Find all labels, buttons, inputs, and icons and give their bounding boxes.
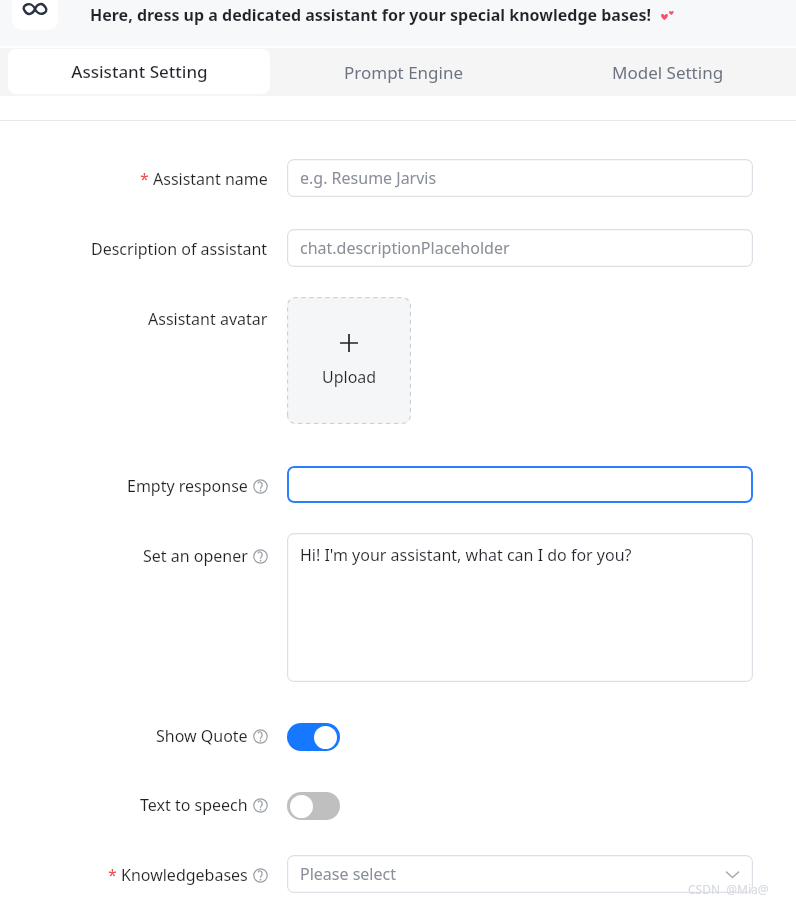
staticText: * [140, 168, 149, 190]
button[interactable]: Assistant Setting [8, 49, 270, 94]
button[interactable]: Prompt Engine [276, 48, 532, 96]
staticText: Empty response [127, 475, 248, 497]
staticText: chat.descriptionPlaceholder [300, 237, 510, 259]
staticText: Prompt Engine [344, 61, 464, 84]
staticText: Set an opener [143, 545, 248, 567]
button[interactable] [287, 466, 753, 503]
button[interactable]: Show Quote toggle [287, 723, 340, 751]
staticText: Assistant Setting [71, 60, 208, 83]
staticText: Text to speech [140, 794, 248, 816]
staticText: Please select [300, 863, 396, 885]
staticText: Description of assistant [91, 238, 268, 260]
staticText: Knowledgebases [121, 864, 248, 886]
button[interactable]: Text to speech toggle [287, 792, 340, 820]
staticText: Assistant name [153, 168, 268, 190]
staticText: Assistant avatar [148, 308, 268, 330]
staticText: e.g. Resume Jarvis [300, 167, 437, 189]
button[interactable]: Please select [287, 855, 753, 893]
button[interactable]: Assistant icon [12, 0, 58, 30]
staticText: Show Quote [156, 725, 248, 747]
button[interactable]: chat.descriptionPlaceholder [287, 229, 753, 267]
staticText: Model Setting [612, 61, 724, 84]
staticText: Hi! I'm your assistant, what can I do fo… [300, 544, 632, 566]
staticText: CSDN @Mia@ [688, 881, 769, 897]
button[interactable]: Model Setting [540, 48, 796, 96]
button[interactable]: Hi! I'm your assistant, what can I do fo… [287, 533, 753, 682]
staticText: * [108, 864, 117, 886]
staticText: Upload [322, 366, 377, 388]
staticText: Here, dress up a dedicated assistant for… [90, 4, 652, 26]
button[interactable]: e.g. Resume Jarvis [287, 159, 753, 197]
button[interactable]: Upload avatar [287, 297, 411, 424]
